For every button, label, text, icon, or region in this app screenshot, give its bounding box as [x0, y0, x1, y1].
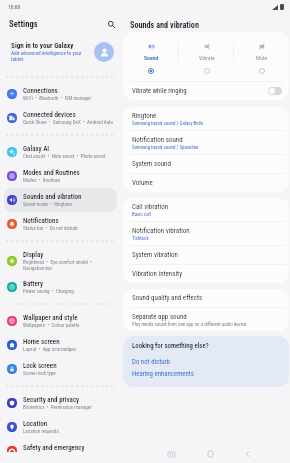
staticText: Sound: [144, 55, 159, 62]
staticText: Connections: [23, 87, 58, 95]
button[interactable]: Galaxy AI: [4, 140, 117, 164]
staticText: Location requests: [23, 428, 59, 434]
staticText: Add advanced intelligence to your tablet…: [11, 50, 91, 63]
staticText: Sign in to your Galaxy: [11, 41, 74, 49]
staticText: Sound quality and effects: [132, 294, 203, 302]
staticText: Samsung brand sound / Galaxy Bells: [132, 120, 204, 126]
button[interactable]: Battery: [4, 275, 117, 299]
button[interactable]: Safety and emergency: [4, 439, 117, 463]
button[interactable]: Hearing enhancements: [132, 370, 194, 378]
staticText: Biometrics • Permission manager: [23, 404, 92, 410]
staticText: Status bar • Do not disturb: [23, 225, 78, 231]
button[interactable]: Ringtone: [123, 107, 289, 130]
button[interactable]: Mute: [234, 32, 289, 81]
button[interactable]: Separate app sound: [123, 308, 289, 331]
staticText: Power saving • Charging: [23, 288, 74, 294]
staticText: Location: [23, 420, 48, 428]
staticText: Settings: [9, 19, 38, 29]
button[interactable]: Sounds and vibration: [4, 188, 117, 212]
button[interactable]: Notification sound: [123, 131, 289, 154]
button[interactable]: Vibration intensity: [123, 265, 289, 283]
button[interactable]: Modes and Routines: [4, 164, 117, 188]
staticText: Modes • Routines: [23, 177, 61, 183]
button[interactable]: Location: [4, 415, 117, 439]
button[interactable]: Wallpaper and style: [4, 309, 117, 333]
button[interactable]: Vibrate while ringing: [123, 82, 289, 100]
button[interactable]: Sound quality and effects: [123, 289, 289, 307]
staticText: Separate app sound: [132, 313, 187, 321]
staticText: Sound mode • Ringtone: [23, 201, 72, 207]
button[interactable]: Notifications: [4, 212, 117, 236]
button[interactable]: Vibrate: [179, 32, 234, 81]
staticText: Chat assist • Note assist • Photo assist: [23, 153, 106, 159]
staticText: Call vibration: [132, 203, 169, 211]
staticText: Notification sound: [132, 136, 183, 144]
staticText: Mute: [256, 55, 268, 62]
staticText: Ticktock: [132, 235, 149, 241]
staticText: Volume: [132, 179, 153, 187]
staticText: Vibrate: [199, 55, 215, 62]
staticText: System vibration: [132, 251, 178, 259]
button[interactable]: Display: [4, 246, 117, 275]
staticText: Wi-Fi • Bluetooth • SIM manager: [23, 95, 91, 101]
staticText: Vibration intensity: [132, 270, 183, 278]
staticText: Notifications: [23, 217, 59, 225]
button[interactable]: Do not disturb: [132, 358, 170, 366]
staticText: Battery: [23, 280, 44, 288]
staticText: Wallpaper and style: [23, 314, 78, 322]
staticText: Layout • App icon badges: [23, 346, 76, 352]
button[interactable]: Sign in to your Galaxy: [0, 35, 121, 72]
staticText: Looking for something else?: [132, 342, 209, 350]
staticText: Wallpapers • Colour palette: [23, 322, 80, 328]
staticText: System sound: [132, 160, 171, 168]
staticText: Modes and Routines: [23, 169, 80, 177]
staticText: Safety and emergency: [23, 444, 85, 452]
staticText: Connected devices: [23, 111, 76, 119]
staticText: Brightness • Eye comfort shield • Naviga…: [23, 259, 114, 271]
button[interactable]: Volume: [123, 174, 289, 192]
staticText: Sounds and vibration: [23, 193, 82, 201]
staticText: Galaxy AI: [23, 145, 50, 153]
button[interactable]: Connections: [4, 82, 117, 106]
button[interactable]: Notification vibration: [123, 222, 289, 245]
staticText: Quick Share • Samsung DeX • Android Auto: [23, 119, 114, 125]
button[interactable]: Search: [105, 18, 117, 30]
button[interactable]: Lock screen: [4, 357, 117, 381]
button[interactable]: Security and privacy: [4, 391, 117, 415]
staticText: Security and privacy: [23, 396, 80, 404]
staticText: 10:00: [8, 4, 21, 10]
staticText: Play media sound from one app on a diffe…: [132, 321, 248, 327]
staticText: Samsung brand sound / Spaceline: [132, 144, 199, 150]
staticText: Home screen: [23, 338, 60, 346]
button[interactable]: System vibration: [123, 246, 289, 264]
button[interactable]: Home: [200, 444, 220, 463]
button[interactable]: System sound: [123, 155, 289, 173]
button[interactable]: Call vibration: [123, 198, 289, 221]
button[interactable]: Home screen: [4, 333, 117, 357]
staticText: Vibrate while ringing: [132, 87, 187, 95]
staticText: Notification vibration: [132, 227, 190, 235]
button[interactable]: Connected devices: [4, 106, 117, 130]
staticText: Ringtone: [132, 112, 157, 120]
button[interactable]: Back: [237, 444, 257, 463]
staticText: Lock screen: [23, 362, 57, 370]
button[interactable]: Vibrate while ringing: [268, 87, 282, 95]
staticText: Sounds and vibration: [130, 20, 199, 30]
button[interactable]: Sound: [123, 32, 179, 81]
staticText: Basic call: [132, 211, 151, 217]
staticText: Display: [23, 251, 44, 259]
staticText: Screen lock type: [23, 370, 56, 376]
button[interactable]: Recents: [161, 444, 181, 463]
